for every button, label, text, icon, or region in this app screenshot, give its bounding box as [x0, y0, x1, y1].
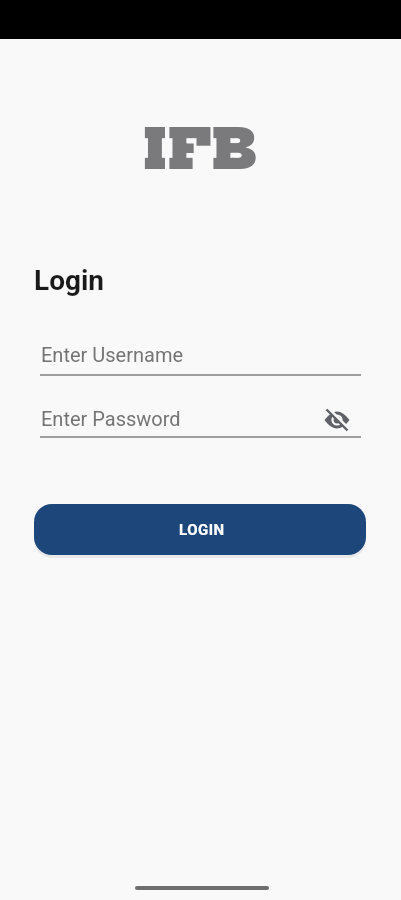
button[interactable]: Enter Username [40, 336, 361, 376]
staticText: IFB [0, 116, 401, 184]
button[interactable] [319, 404, 355, 436]
button[interactable]: Enter Password [40, 398, 361, 438]
staticText: Enter Password [41, 407, 181, 430]
staticText: LOGIN [179, 521, 225, 539]
button[interactable]: LOGIN [34, 504, 366, 555]
staticText: Login [34, 264, 105, 297]
staticText: Enter Username [41, 343, 184, 366]
